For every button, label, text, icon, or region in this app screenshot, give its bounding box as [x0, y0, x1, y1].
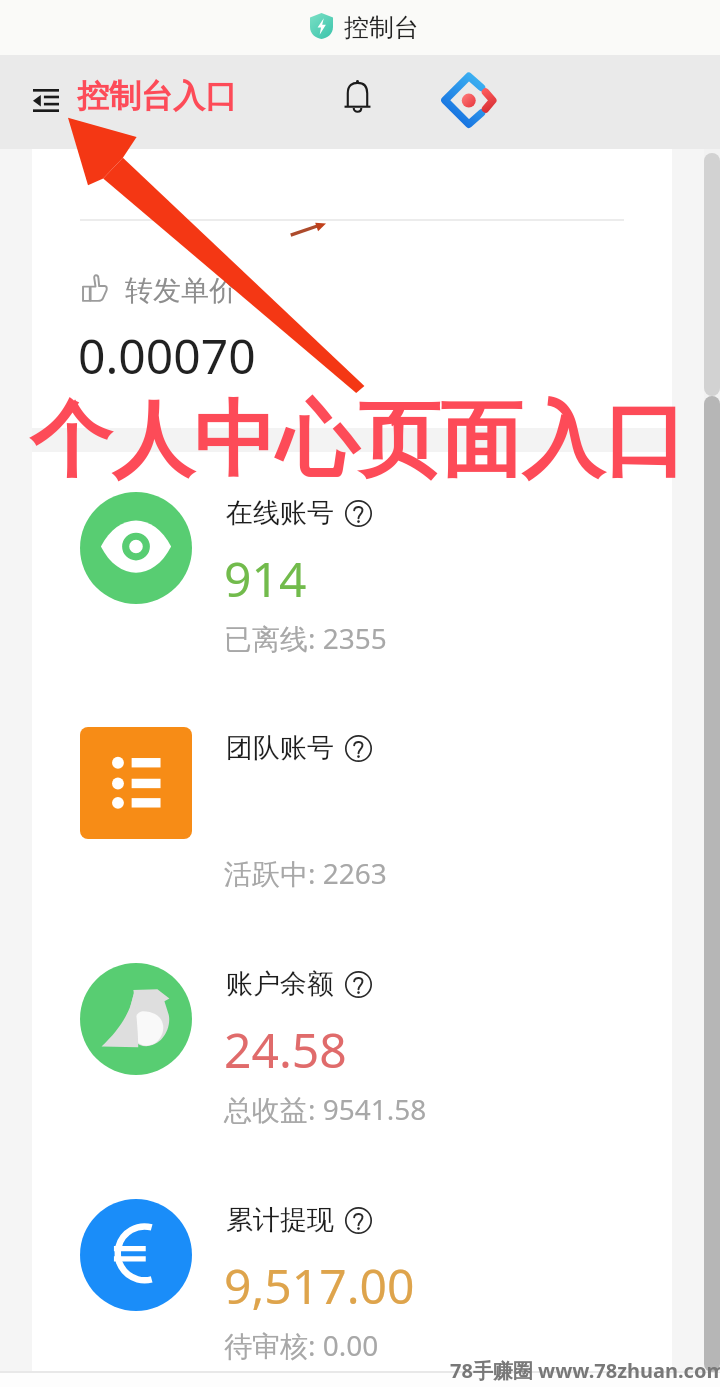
button[interactable]: Menu: [21, 76, 70, 125]
staticText: 0.00070: [78, 323, 256, 388]
staticText: 总收益: 9541.58: [224, 1090, 427, 1128]
staticText: 待审核: 0.00: [224, 1326, 379, 1364]
button[interactable]: [32, 1169, 672, 1387]
button[interactable]: [32, 933, 672, 1159]
staticText: 转发单价: [125, 273, 237, 308]
staticText: 团队账号: [226, 731, 334, 765]
staticText: 已离线: 2355: [224, 619, 387, 657]
staticText: 914: [224, 546, 307, 611]
staticText: 控制台入口: [77, 76, 237, 116]
button[interactable]: [32, 697, 672, 923]
staticText: 78手赚圈 www.78zhuan.com: [450, 1357, 720, 1384]
button[interactable]: App logo: [437, 68, 501, 132]
staticText: 累计提现: [226, 1203, 334, 1237]
staticText: 控制台: [344, 12, 419, 43]
staticText: 账户余额: [226, 967, 334, 1001]
staticText: 个人中心页面入口: [30, 389, 686, 492]
button[interactable]: Notifications: [333, 72, 381, 120]
staticText: 9,517.00: [224, 1253, 415, 1318]
staticText: 24.58: [224, 1017, 347, 1082]
staticText: 活跃中: 2263: [224, 854, 387, 892]
staticText: 在线账号: [226, 496, 334, 530]
button[interactable]: [32, 462, 672, 688]
